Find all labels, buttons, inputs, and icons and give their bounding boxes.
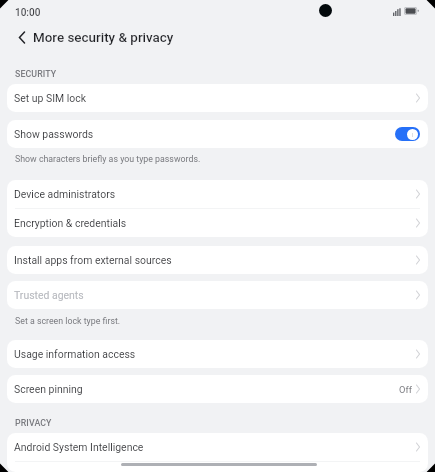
button[interactable]: Show passwords	[7, 120, 428, 148]
staticText: Install apps from external sources	[14, 254, 172, 266]
staticText: SECURITY	[15, 69, 57, 79]
staticText: More security & privacy	[33, 30, 174, 46]
button[interactable]: Set up SIM lock	[7, 84, 428, 112]
button[interactable]: Back	[8, 23, 36, 51]
button[interactable]: Screen pinning	[7, 375, 428, 403]
button[interactable]: Device administrators	[7, 180, 428, 208]
staticText: Show characters briefly as you type pass…	[15, 154, 201, 164]
staticText: Encryption & credentials	[14, 217, 127, 229]
staticText: Device administrators	[14, 188, 116, 200]
button[interactable]: Usage information access	[7, 340, 428, 368]
staticText: Screen pinning	[14, 383, 83, 395]
button[interactable]: Install apps from external sources	[7, 246, 428, 274]
staticText: Android System Intelligence	[14, 441, 144, 453]
button[interactable]: Android System Intelligence	[7, 433, 428, 461]
staticText: Set up SIM lock	[14, 92, 86, 104]
button[interactable]: Encryption & credentials	[7, 209, 428, 237]
button[interactable]	[7, 462, 428, 472]
staticText: Trusted agents	[14, 289, 84, 301]
staticText: Set a screen lock type first.	[15, 316, 121, 326]
staticText: Usage information access	[14, 348, 136, 360]
staticText: 10:00	[15, 7, 41, 19]
staticText: PRIVACY	[15, 418, 52, 428]
button[interactable]: Trusted agents	[7, 281, 428, 309]
staticText: Show passwords	[14, 128, 94, 140]
staticText: Off	[399, 384, 412, 395]
